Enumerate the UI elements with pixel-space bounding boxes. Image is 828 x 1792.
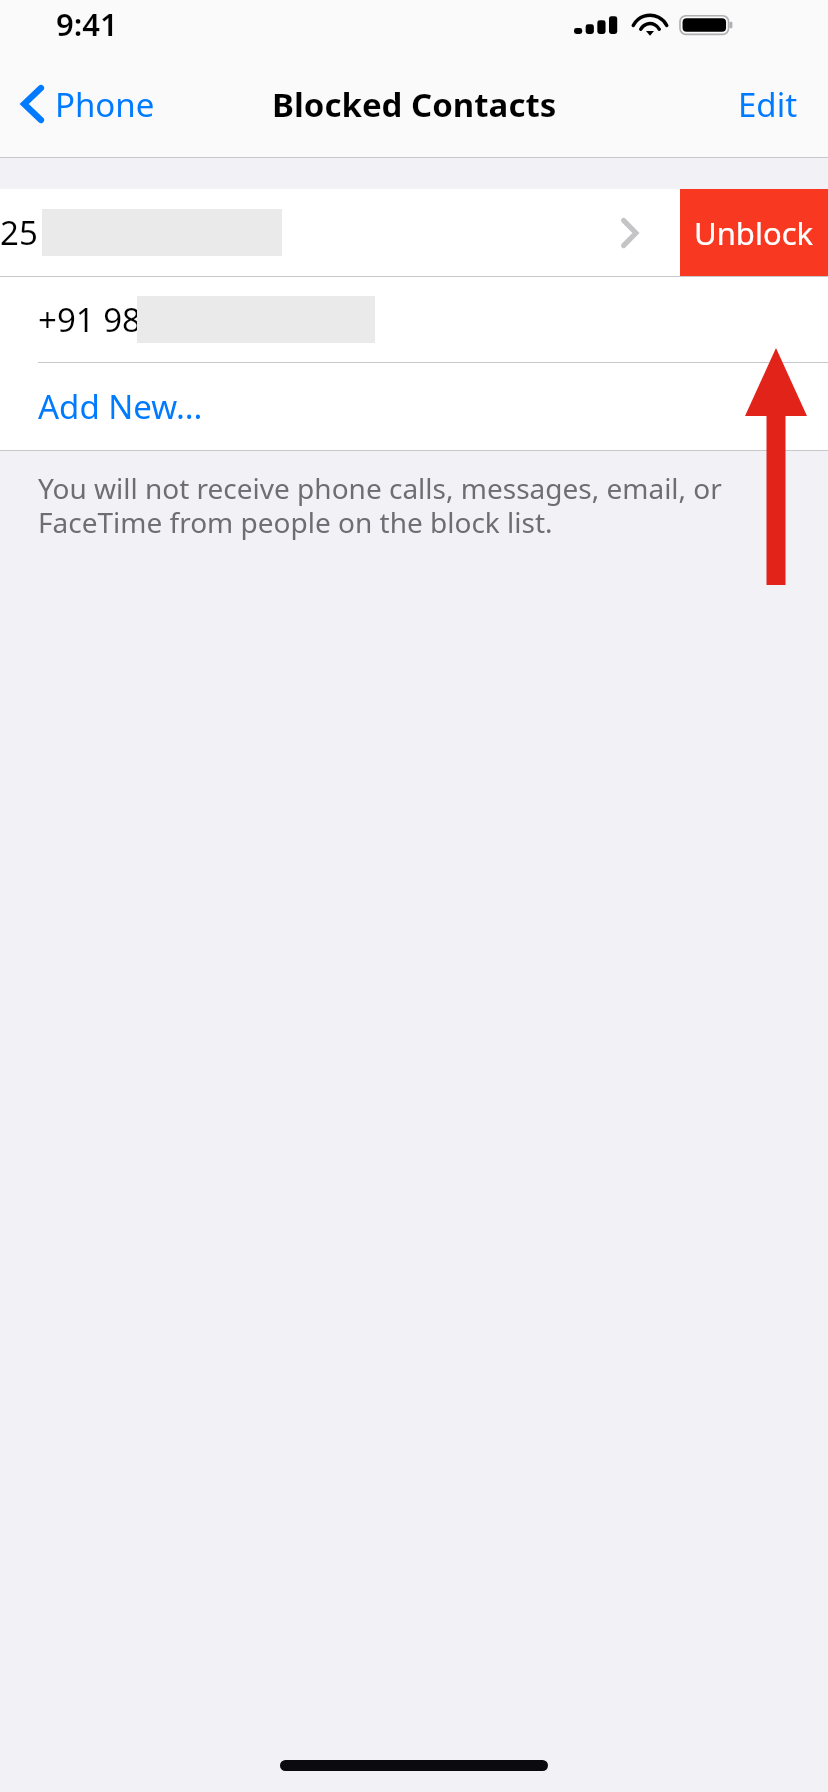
staticText: Phone	[55, 82, 155, 127]
staticText: 9:41	[56, 3, 118, 45]
staticText: Blocked Contacts	[272, 82, 557, 127]
staticText: Unblock	[694, 212, 814, 254]
button[interactable]: Unblock	[680, 189, 828, 276]
button[interactable]: Add New...	[0, 363, 828, 450]
staticText: +91 98	[38, 297, 141, 342]
staticText: Edit	[738, 82, 798, 127]
staticText: 25	[0, 210, 38, 255]
button[interactable]: Edit	[708, 50, 828, 158]
button[interactable]: Phone	[0, 50, 171, 158]
staticText: Add New...	[38, 384, 203, 429]
staticText: You will not receive phone calls, messag…	[38, 469, 798, 542]
button[interactable]: +91 98	[0, 277, 828, 362]
button[interactable]: 25	[0, 189, 790, 276]
